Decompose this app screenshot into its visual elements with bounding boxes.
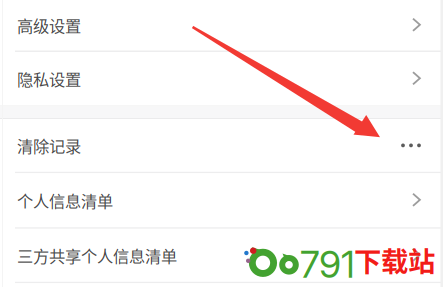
staticText: 高级设置 [17,13,81,37]
button[interactable]: 高级设置 [0,0,443,50]
staticText: 791 [300,241,355,287]
staticText: 下载站 [354,240,435,280]
button[interactable]: 三方共享个人信息清单 [0,229,443,282]
staticText: 清除记录 [17,134,81,157]
button[interactable]: 清除记录 [0,119,443,172]
staticText: 个人信息清单 [17,188,113,212]
button[interactable]: 个人信息清单 [0,173,443,227]
staticText: 隐私设置 [17,67,81,91]
button[interactable]: 隐私设置 [0,52,443,105]
staticText: 三方共享个人信息清单 [17,243,177,267]
